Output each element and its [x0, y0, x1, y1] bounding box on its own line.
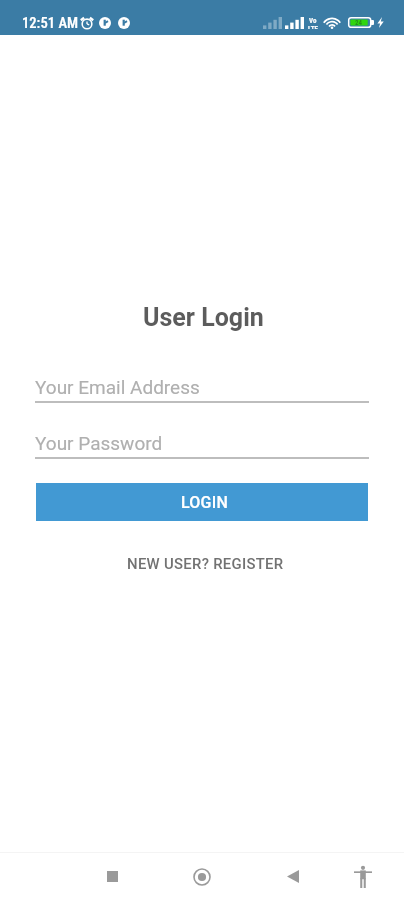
button[interactable]: LOGIN	[36, 483, 368, 521]
button[interactable]: Accessibility	[335, 853, 391, 900]
staticText: 12:51 AM	[22, 14, 79, 31]
staticText: LTE	[308, 25, 318, 29]
staticText: NEW USER? REGISTER	[127, 555, 284, 572]
staticText: Your Password	[35, 432, 163, 454]
staticText: Vo	[309, 17, 317, 25]
button[interactable]: NEW USER? REGISTER	[115, 550, 296, 577]
staticText: 24	[355, 19, 363, 27]
staticText: Your Email Address	[35, 376, 200, 398]
staticText: User Login	[143, 303, 264, 332]
button[interactable]: Back	[265, 853, 321, 900]
button[interactable]: Your Password	[35, 431, 369, 459]
staticText: LOGIN	[181, 493, 228, 512]
button[interactable]: Recent apps	[84, 853, 140, 900]
button[interactable]: Home	[174, 853, 230, 900]
button[interactable]: Your Email Address	[35, 375, 369, 403]
